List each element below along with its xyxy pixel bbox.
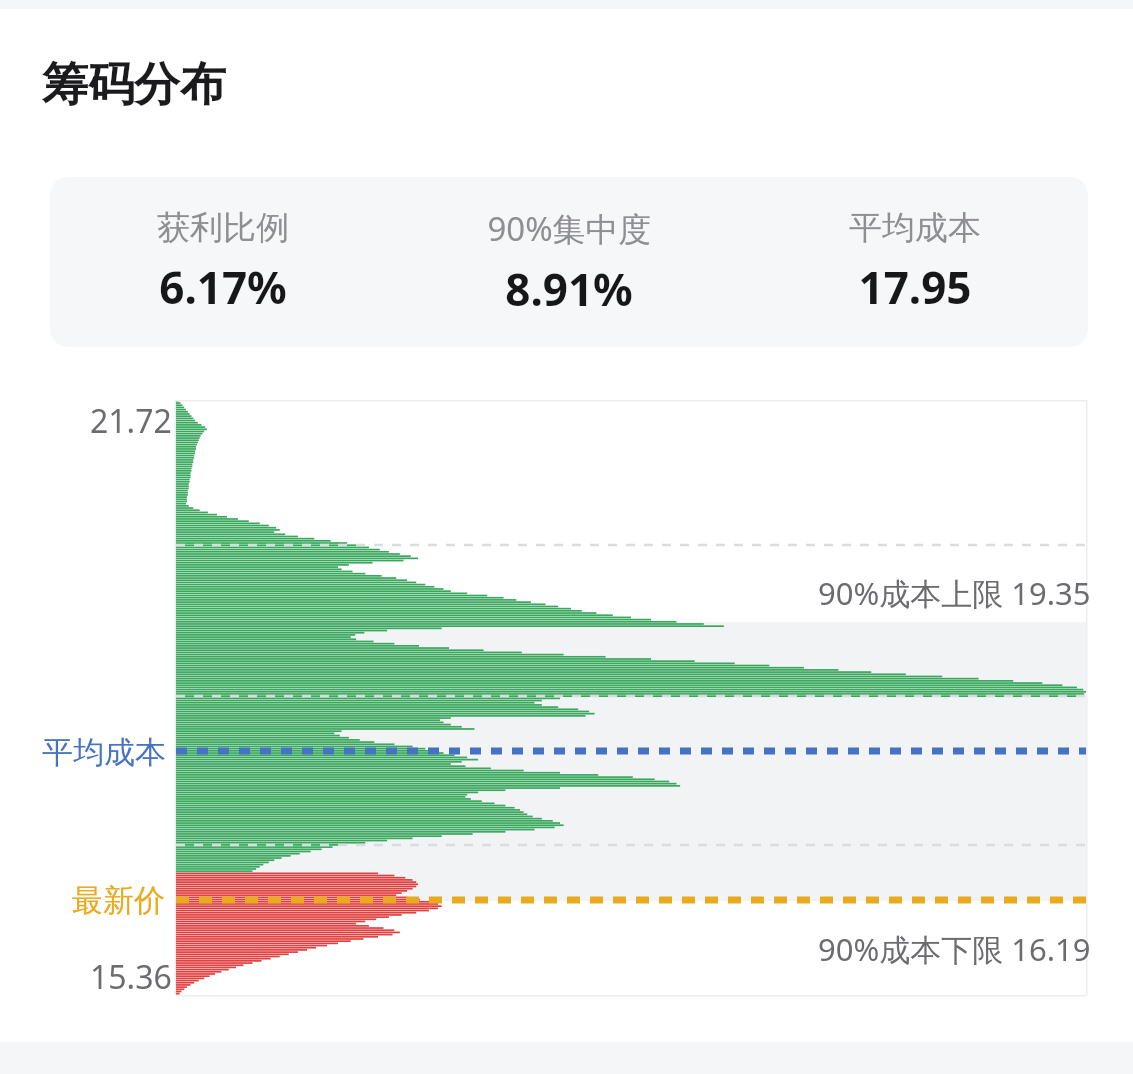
button[interactable]: 筹码分布 (38, 54, 230, 116)
button[interactable]: 平均成本 (42, 733, 166, 772)
staticText: 90%成本下限 16.19 (818, 928, 1091, 970)
button[interactable]: 21.72 (90, 399, 172, 443)
staticText: 8.91% (505, 259, 633, 319)
button[interactable]: 获利比例 (50, 177, 1088, 347)
staticText: 获利比例 (157, 207, 289, 249)
staticText: 最新价 (72, 881, 165, 920)
other: 筹码分布图 (0, 0, 1133, 1074)
staticText: 17.95 (858, 257, 972, 317)
button[interactable]: 90%成本下限 16.19 (818, 928, 1091, 970)
staticText: 6.17% (159, 257, 287, 317)
staticText: 15.36 (90, 955, 172, 999)
button[interactable]: 90%集中度 (396, 177, 742, 347)
button[interactable]: 平均成本 (742, 177, 1088, 347)
staticText: 筹码分布 (42, 56, 226, 114)
button[interactable]: 获利比例 (50, 177, 396, 347)
button[interactable]: 最新价 (72, 881, 165, 920)
staticText: 21.72 (90, 399, 172, 443)
staticText: 平均成本 (42, 733, 166, 772)
button[interactable]: 90%成本上限 19.35 (818, 572, 1091, 614)
staticText: 90%集中度 (487, 206, 652, 251)
staticText: 90%成本上限 19.35 (818, 572, 1091, 614)
button[interactable]: 15.36 (90, 955, 172, 999)
staticText: 平均成本 (849, 207, 981, 249)
